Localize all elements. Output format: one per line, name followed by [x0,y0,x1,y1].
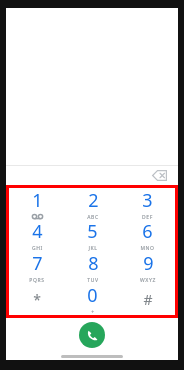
button[interactable]: 4 [9,219,65,251]
button[interactable]: 0 [65,283,120,315]
staticText: 5 [87,219,98,244]
staticText: ABC [87,214,99,219]
staticText: DEF [142,214,153,219]
staticText: TUV [87,277,99,283]
button[interactable]: 6 [120,219,175,251]
staticText: JKL [88,245,98,251]
button[interactable]: # [120,283,175,315]
staticText: MNO [140,245,155,251]
button[interactable]: 5 [65,219,120,251]
staticText: GHI [32,245,43,251]
staticText: * [33,290,41,309]
staticText: 6 [142,219,153,244]
staticText: 1 [32,188,43,213]
staticText: + [91,309,95,315]
staticText: 7 [32,251,43,276]
button[interactable]: 3 [120,188,175,219]
button[interactable]: Backspace [148,166,170,185]
button[interactable]: 1 [9,188,65,219]
staticText: 2 [88,188,99,213]
staticText: WXYZ [140,277,156,283]
staticText: PQRS [29,277,45,283]
button[interactable]: * [9,283,65,315]
button[interactable]: 2 [65,188,120,219]
button[interactable]: 9 [120,251,175,283]
staticText: 8 [88,251,99,276]
staticText: 9 [143,251,154,276]
staticText: 4 [32,219,43,244]
staticText: # [143,290,153,309]
button[interactable]: Call [79,322,105,348]
staticText: 0 [87,283,98,308]
staticText: 3 [142,188,153,213]
button[interactable]: 8 [65,251,120,283]
button[interactable]: 7 [9,251,65,283]
